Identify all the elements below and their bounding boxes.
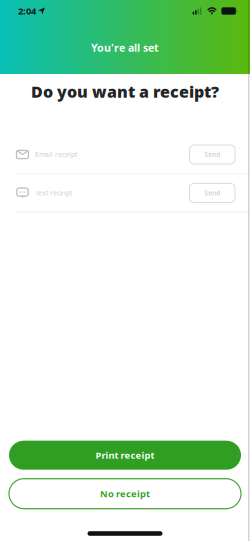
staticText: No receipt	[100, 487, 150, 500]
staticText: You're all set	[91, 40, 159, 55]
staticText: Email receipt	[35, 150, 77, 159]
staticText: Send	[204, 150, 220, 159]
button[interactable]: Send	[189, 183, 235, 202]
staticText: 2:04	[18, 5, 36, 17]
staticText: Do you want a receipt?	[31, 81, 219, 102]
button[interactable]: Print receipt	[9, 441, 241, 470]
staticText: Send	[204, 189, 220, 197]
button[interactable]: No receipt	[9, 479, 241, 509]
staticText: Text receipt	[35, 189, 72, 197]
button[interactable]: Send	[189, 145, 235, 164]
staticText: Print receipt	[95, 449, 154, 461]
